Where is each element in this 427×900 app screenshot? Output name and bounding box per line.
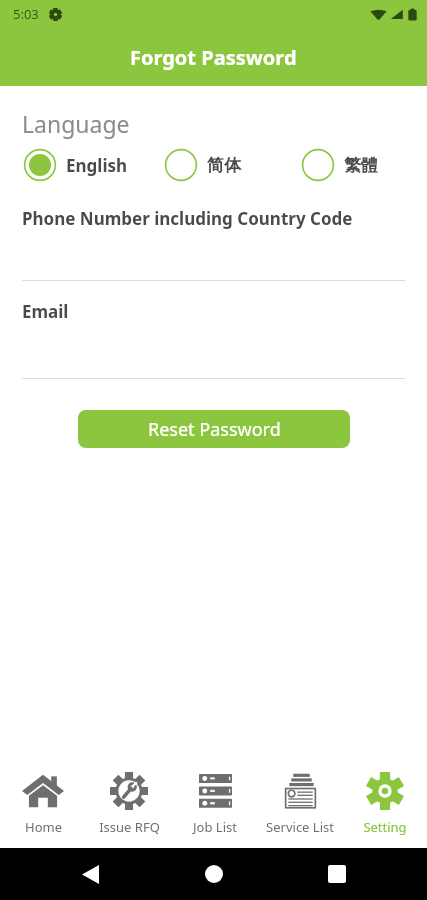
button[interactable]: Service List: [257, 760, 342, 848]
button[interactable]: Job List: [172, 760, 257, 848]
staticText: Phone Number including Country Code: [22, 207, 353, 230]
button[interactable]: Home: [0, 760, 86, 848]
staticText: Language: [22, 108, 130, 139]
staticText: Setting: [363, 818, 407, 836]
button[interactable]: 简体: [163, 147, 241, 183]
button[interactable]: English: [22, 147, 128, 183]
staticText: Issue RFQ: [99, 818, 160, 836]
button[interactable]: Home: [181, 848, 246, 900]
staticText: 简体: [207, 155, 241, 176]
staticText: Home: [25, 818, 62, 836]
staticText: Forgot Password: [130, 44, 297, 71]
button[interactable]: Reset Password: [78, 410, 350, 448]
button[interactable]: Recents: [246, 848, 427, 900]
staticText: Email: [22, 300, 69, 323]
staticText: Service List: [266, 818, 334, 836]
staticText: Reset Password: [148, 417, 281, 442]
button[interactable]: 繁體: [300, 147, 378, 183]
button[interactable]: Back: [0, 848, 181, 900]
staticText: Job List: [193, 818, 237, 836]
staticText: 繁體: [344, 155, 378, 176]
staticText: English: [66, 154, 128, 177]
staticText: 5:03: [13, 5, 39, 23]
button[interactable]: Setting: [342, 760, 427, 848]
button[interactable]: Issue RFQ: [86, 760, 172, 848]
